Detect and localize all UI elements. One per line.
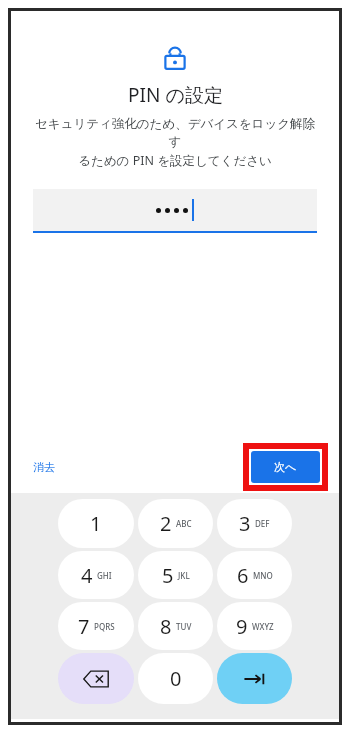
button[interactable]: 4 <box>58 551 134 599</box>
staticText: 2 <box>160 510 172 537</box>
staticText: GHI <box>97 570 112 581</box>
staticText: DEF <box>255 518 270 529</box>
staticText: WXYZ <box>252 621 274 632</box>
button[interactable]: 7 <box>58 602 134 650</box>
staticText: 3 <box>239 510 251 537</box>
button[interactable]: 0 <box>138 653 213 704</box>
staticText: 1 <box>90 510 102 537</box>
button[interactable]: 1 <box>58 499 134 548</box>
button[interactable]: 9 <box>217 602 292 650</box>
staticText: TUV <box>176 621 192 632</box>
staticText: 5 <box>162 562 174 589</box>
staticText: セキュリティ強化のため、デバイスをロック解除す るための PIN を設定してくだ… <box>31 116 319 169</box>
staticText: PIN の設定 <box>128 82 223 108</box>
button[interactable]: Enter <box>217 653 292 704</box>
staticText: 9 <box>236 613 248 640</box>
staticText: 6 <box>237 562 249 589</box>
button[interactable]: 消去 <box>29 456 59 478</box>
button[interactable] <box>33 189 317 233</box>
staticText: MNO <box>253 570 273 581</box>
staticText: 消去 <box>33 460 55 474</box>
button[interactable]: 2 <box>138 499 213 548</box>
staticText: ABC <box>176 518 192 529</box>
staticText: PQRS <box>94 621 115 632</box>
staticText: 4 <box>81 562 93 589</box>
staticText: 0 <box>170 665 182 692</box>
button[interactable]: 次へ <box>251 451 320 483</box>
button[interactable]: 8 <box>138 602 213 650</box>
staticText: JKL <box>178 570 190 581</box>
staticText: 次へ <box>274 460 297 474</box>
button[interactable]: 6 <box>217 551 292 599</box>
staticText: 7 <box>78 613 90 640</box>
button[interactable]: 3 <box>217 499 292 548</box>
button[interactable]: Backspace <box>58 653 134 704</box>
button[interactable]: 5 <box>138 551 213 599</box>
staticText: 8 <box>160 613 172 640</box>
